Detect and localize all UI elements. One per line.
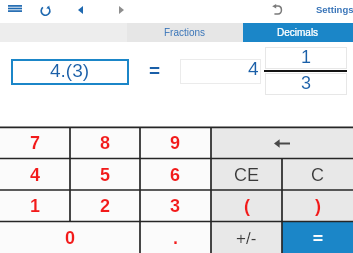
staticText: 5: [100, 165, 111, 185]
button[interactable]: 6: [140, 159, 210, 191]
button[interactable]: CE: [211, 159, 282, 191]
staticText: 1: [30, 196, 41, 216]
button[interactable]: 0: [0, 222, 140, 253]
staticText: 0: [65, 228, 76, 248]
staticText: 3: [170, 196, 181, 216]
staticText: .: [173, 228, 179, 248]
staticText: 4: [30, 165, 41, 185]
staticText: 8: [100, 133, 111, 153]
button[interactable]: Next: [111, 0, 131, 20]
button[interactable]: .: [140, 222, 211, 253]
staticText: Decimals: [277, 27, 319, 38]
staticText: Fractions: [164, 27, 206, 38]
button[interactable]: =: [282, 222, 353, 253]
button[interactable]: 4.(3): [11, 59, 129, 85]
button[interactable]: C: [282, 159, 353, 191]
button[interactable]: 3: [140, 190, 210, 222]
staticText: 3: [301, 73, 312, 93]
staticText: C: [311, 165, 324, 185]
button[interactable]: (: [211, 190, 282, 222]
button[interactable]: Decimals: [243, 23, 353, 42]
button[interactable]: 7: [0, 127, 70, 159]
staticText: =: [149, 60, 161, 76]
button[interactable]: Menu: [3, 0, 26, 20]
staticText: Settings: [316, 4, 353, 15]
staticText: 4: [248, 58, 259, 79]
button[interactable]: Redo: [35, 0, 56, 21]
button[interactable]: Previous: [70, 0, 90, 20]
staticText: 2: [100, 196, 111, 216]
staticText: 1: [301, 47, 312, 67]
staticText: +/-: [236, 229, 257, 248]
button[interactable]: 4: [0, 159, 70, 191]
staticText: 9: [170, 133, 181, 153]
button[interactable]: 5: [70, 159, 140, 191]
button[interactable]: Fractions: [127, 23, 243, 42]
staticText: 6: [170, 165, 181, 185]
button[interactable]: +/-: [211, 222, 282, 253]
button[interactable]: Settings: [311, 0, 353, 20]
staticText: =: [313, 229, 323, 248]
staticText: 7: [30, 133, 41, 153]
button[interactable]: 8: [70, 127, 140, 159]
staticText: (: [244, 196, 250, 216]
staticText: ): [315, 196, 321, 216]
button[interactable]: Backspace: [211, 127, 353, 159]
staticText: 4.(3): [50, 60, 90, 81]
button[interactable]: 9: [140, 127, 210, 159]
staticText: CE: [234, 165, 260, 185]
button[interactable]: Undo: [267, 0, 287, 20]
button[interactable]: 1: [0, 190, 70, 222]
button[interactable]: 2: [70, 190, 140, 222]
button[interactable]: ): [282, 190, 353, 222]
